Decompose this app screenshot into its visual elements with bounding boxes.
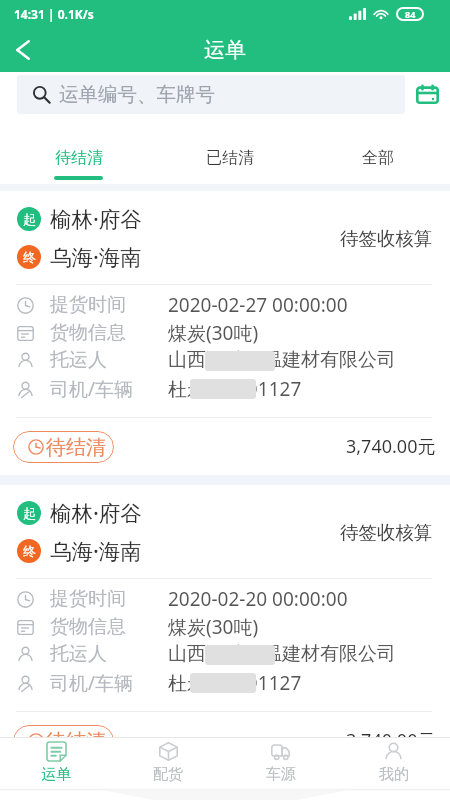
staticText: 84 xyxy=(405,8,416,20)
staticText: 提货时间 xyxy=(50,587,126,611)
staticText: 煤炭(30吨) xyxy=(168,320,259,346)
staticText: 杜永强晋D1127 xyxy=(168,670,302,696)
staticText: 2020-02-27 00:00:00 xyxy=(168,292,348,318)
staticText: 已结清 xyxy=(206,148,254,168)
staticText: 货物信息 xyxy=(50,615,126,639)
button[interactable]: 已结清 xyxy=(154,117,305,184)
button[interactable]: 全部 xyxy=(305,117,450,184)
staticText: 榆林·府谷 xyxy=(50,204,142,233)
staticText: 运单 xyxy=(204,37,246,63)
button[interactable]: 运单 xyxy=(0,738,112,788)
staticText: 起 xyxy=(23,505,36,521)
button[interactable]: 运单编号、车牌号 xyxy=(17,75,405,114)
staticText: 煤炭(30吨) xyxy=(168,614,259,640)
button[interactable]: 待结清 xyxy=(13,431,114,463)
staticText: 配货 xyxy=(153,765,183,784)
staticText: 3,740.00元 xyxy=(346,728,436,737)
staticText: 起 xyxy=(23,211,36,227)
staticText: 托运人 xyxy=(50,642,107,666)
staticText: 3,740.00元 xyxy=(346,434,436,459)
button[interactable]: 车源 xyxy=(224,738,337,788)
staticText: 山西晋城保温建材有限公司 xyxy=(168,642,396,666)
button[interactable]: 待结清 xyxy=(13,725,114,737)
staticText: 榆林·府谷 xyxy=(50,498,142,527)
staticText: 托运人 xyxy=(50,348,107,372)
staticText: 全部 xyxy=(362,148,394,168)
button[interactable]: 待结清 xyxy=(2,117,154,184)
staticText: 司机/车辆 xyxy=(50,376,134,402)
staticText: 山西晋城保温建材有限公司 xyxy=(168,348,396,372)
staticText: 运单 xyxy=(41,765,71,784)
staticText: 车源 xyxy=(266,765,296,784)
staticText: 待结清 xyxy=(55,148,103,168)
staticText: 终 xyxy=(23,543,36,559)
button[interactable]: 我的 xyxy=(337,738,450,788)
staticText: 待结清 xyxy=(46,435,106,460)
button[interactable]: 配货 xyxy=(112,738,224,788)
staticText: 14:31 | 0.1K/s xyxy=(14,6,94,22)
staticText: 终 xyxy=(23,249,36,265)
staticText: 运单编号、车牌号 xyxy=(59,82,215,107)
button[interactable]: Select date xyxy=(405,75,450,114)
staticText: 杜永强晋D1127 xyxy=(168,376,302,402)
staticText: 我的 xyxy=(379,765,409,784)
staticText: 货物信息 xyxy=(50,321,126,345)
staticText: 待签收核算 xyxy=(340,521,433,544)
staticText: 司机/车辆 xyxy=(50,670,134,696)
staticText: 待签收核算 xyxy=(340,227,433,250)
staticText: 待结清 xyxy=(46,729,106,737)
staticText: 乌海·海南 xyxy=(50,536,142,565)
staticText: 乌海·海南 xyxy=(50,242,142,271)
staticText: 2020-02-20 00:00:00 xyxy=(168,586,348,612)
staticText: 提货时间 xyxy=(50,293,126,317)
button[interactable]: Back xyxy=(0,27,46,72)
